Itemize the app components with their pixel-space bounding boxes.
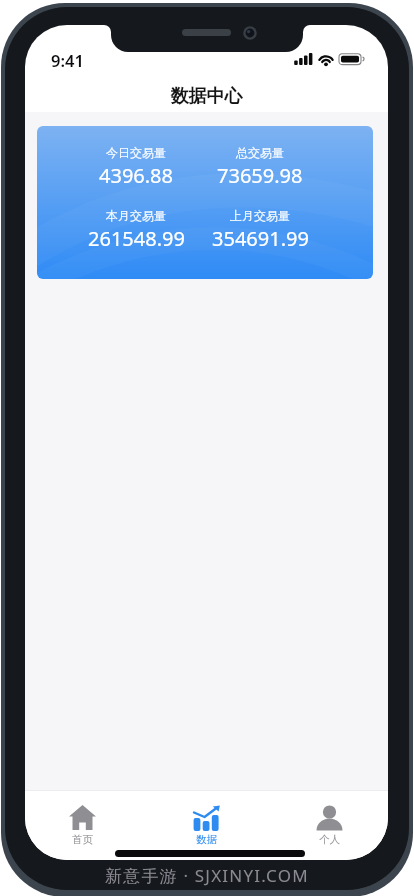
staticText: 上月交易量: [230, 208, 290, 223]
staticText: 9:41: [51, 49, 84, 71]
staticText: 首页: [72, 833, 93, 846]
staticText: 354691.99: [212, 225, 309, 252]
button[interactable]: 数据: [146, 791, 267, 860]
staticText: 个人: [319, 833, 340, 846]
staticText: 新意手游 · SJXINYI.COM: [105, 864, 309, 887]
staticText: 今日交易量: [106, 145, 166, 160]
button[interactable]: 首页: [25, 791, 143, 860]
staticText: 4396.88: [99, 162, 173, 189]
staticText: 数据: [196, 833, 217, 846]
staticText: 本月交易量: [106, 208, 166, 223]
staticText: 261548.99: [88, 225, 185, 252]
button[interactable]: 个人: [269, 791, 388, 860]
staticText: 总交易量: [236, 145, 284, 160]
staticText: 73659.98: [217, 162, 303, 189]
staticText: 数据中心: [25, 85, 388, 108]
